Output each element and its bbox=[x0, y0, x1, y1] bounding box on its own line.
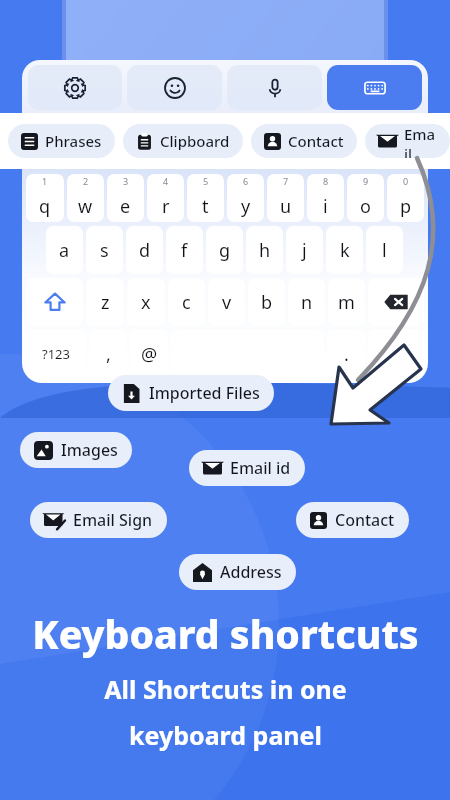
staticText: j bbox=[302, 238, 307, 263]
staticText: 9 bbox=[363, 175, 369, 187]
button[interactable]: k bbox=[326, 226, 363, 274]
button[interactable]: , bbox=[89, 330, 127, 378]
staticText: y bbox=[241, 194, 251, 219]
staticText: . bbox=[344, 342, 349, 367]
button[interactable]: m bbox=[328, 278, 365, 326]
staticText: Email bbox=[404, 124, 437, 158]
staticText: 0 bbox=[403, 175, 409, 187]
staticText: e bbox=[120, 194, 131, 219]
button[interactable]: ?123 bbox=[26, 330, 86, 378]
staticText: Email Sign bbox=[73, 509, 153, 531]
staticText: Contact bbox=[335, 509, 395, 531]
staticText: n bbox=[301, 290, 313, 315]
button[interactable]: Backspace bbox=[368, 278, 424, 326]
button[interactable] bbox=[368, 330, 424, 378]
staticText: Clipboard bbox=[160, 131, 230, 151]
button[interactable]: c bbox=[168, 278, 205, 326]
staticText: Address bbox=[220, 561, 282, 583]
button[interactable]: z bbox=[86, 278, 124, 326]
staticText: ?123 bbox=[42, 345, 70, 363]
button[interactable]: h bbox=[246, 226, 283, 274]
button[interactable]: Phrases bbox=[8, 124, 115, 158]
staticText: h bbox=[259, 238, 271, 263]
staticText: 2 bbox=[83, 175, 89, 187]
staticText: c bbox=[182, 290, 191, 315]
staticText: Phrases bbox=[45, 131, 102, 151]
button[interactable]: Email Sign bbox=[30, 502, 167, 538]
button[interactable]: Email bbox=[365, 124, 450, 158]
button[interactable]: 1 bbox=[26, 174, 64, 222]
staticText: Keyboard shortcuts bbox=[32, 607, 419, 660]
button[interactable]: 5 bbox=[187, 174, 224, 222]
staticText: z bbox=[101, 290, 110, 315]
staticText: w bbox=[78, 194, 93, 219]
button[interactable]: l bbox=[366, 226, 403, 274]
button[interactable]: s bbox=[86, 226, 123, 274]
button[interactable]: Contact bbox=[296, 502, 409, 538]
button[interactable]: v bbox=[208, 278, 245, 326]
staticText: keyboard panel bbox=[129, 718, 322, 752]
button[interactable]: Keyboard bbox=[327, 65, 422, 110]
button[interactable]: Settings bbox=[28, 65, 122, 110]
button[interactable]: x bbox=[127, 278, 165, 326]
button[interactable]: 0 bbox=[387, 174, 424, 222]
staticText: Email id bbox=[230, 457, 291, 479]
button[interactable]: 8 bbox=[307, 174, 344, 222]
staticText: p bbox=[400, 194, 412, 219]
staticText: k bbox=[340, 238, 350, 263]
staticText: q bbox=[39, 194, 51, 219]
button[interactable]: n bbox=[288, 278, 325, 326]
button[interactable]: Address bbox=[179, 554, 296, 590]
staticText: , bbox=[106, 342, 111, 367]
staticText: @ bbox=[141, 342, 158, 367]
button[interactable]: 7 bbox=[267, 174, 304, 222]
staticText: 1 bbox=[42, 175, 48, 187]
staticText: u bbox=[280, 194, 292, 219]
staticText: d bbox=[139, 238, 151, 263]
staticText: f bbox=[181, 238, 188, 263]
staticText: g bbox=[219, 238, 231, 263]
staticText: l bbox=[382, 238, 387, 263]
staticText: s bbox=[100, 238, 109, 263]
button[interactable]: Images bbox=[20, 432, 132, 468]
staticText: o bbox=[360, 194, 371, 219]
staticText: 5 bbox=[203, 175, 209, 187]
button[interactable]: Imported Files bbox=[108, 375, 274, 411]
button[interactable]: 4 bbox=[147, 174, 184, 222]
staticText: 6 bbox=[243, 175, 249, 187]
staticText: m bbox=[338, 290, 355, 315]
button[interactable]: a bbox=[46, 226, 83, 274]
staticText: Images bbox=[61, 439, 118, 461]
button[interactable]: b bbox=[248, 278, 285, 326]
staticText: v bbox=[222, 290, 232, 315]
button[interactable]: 9 bbox=[347, 174, 384, 222]
staticText: 7 bbox=[283, 175, 289, 187]
staticText: b bbox=[261, 290, 273, 315]
staticText: 8 bbox=[323, 175, 329, 187]
button[interactable]: . bbox=[327, 330, 365, 378]
button[interactable]: j bbox=[286, 226, 323, 274]
button[interactable]: d bbox=[126, 226, 163, 274]
staticText: i bbox=[323, 194, 328, 219]
button[interactable]: Contact bbox=[251, 124, 357, 158]
staticText: x bbox=[141, 290, 151, 315]
button[interactable]: Emoji bbox=[127, 65, 222, 110]
staticText: All Shortcuts in one bbox=[104, 672, 347, 706]
button[interactable]: 3 bbox=[107, 174, 144, 222]
button[interactable]: @ bbox=[130, 330, 168, 378]
staticText: r bbox=[162, 194, 170, 219]
button[interactable]: f bbox=[166, 226, 203, 274]
staticText: Contact bbox=[288, 131, 344, 151]
button[interactable]: Shift bbox=[26, 278, 83, 326]
staticText: t bbox=[202, 194, 209, 219]
button[interactable]: 2 bbox=[67, 174, 104, 222]
button[interactable]: Voice input bbox=[227, 65, 322, 110]
staticText: a bbox=[59, 238, 70, 263]
button[interactable]: Clipboard bbox=[123, 124, 243, 158]
button[interactable]: g bbox=[206, 226, 243, 274]
staticText: 3 bbox=[123, 175, 129, 187]
staticText: Imported Files bbox=[149, 382, 260, 404]
button[interactable] bbox=[171, 330, 324, 378]
button[interactable]: 6 bbox=[227, 174, 264, 222]
button[interactable]: Email id bbox=[189, 450, 305, 486]
